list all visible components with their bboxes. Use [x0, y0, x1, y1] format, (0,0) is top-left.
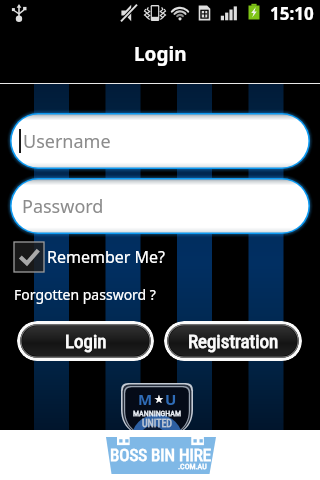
staticText: Username	[23, 129, 111, 154]
button[interactable]: Forgotten password ?	[14, 285, 156, 304]
staticText: Login	[134, 41, 187, 67]
staticText: .COM.AU	[178, 462, 207, 471]
staticText: U	[165, 389, 177, 409]
staticText: MANNINGHAM	[133, 409, 182, 418]
staticText: BOSS BIN HIRE	[110, 445, 212, 465]
staticText: Registration	[188, 330, 279, 352]
button[interactable]: Registration	[164, 321, 302, 361]
button[interactable]: Boss Bin Hire advertisement	[0, 430, 320, 480]
button[interactable]: Login	[17, 321, 154, 361]
staticText: Remember Me?	[47, 246, 166, 268]
button[interactable]: Remember Me	[14, 242, 166, 272]
staticText: Login	[65, 330, 107, 352]
button[interactable]: Username	[10, 113, 310, 169]
staticText: UNITED	[142, 418, 173, 430]
staticText: Password	[22, 194, 104, 219]
staticText: M	[138, 389, 153, 409]
staticText: 15:10	[270, 2, 314, 25]
button[interactable]: Remember Me	[14, 242, 44, 272]
button[interactable]: Password	[10, 178, 310, 234]
staticText: ★	[154, 393, 164, 406]
